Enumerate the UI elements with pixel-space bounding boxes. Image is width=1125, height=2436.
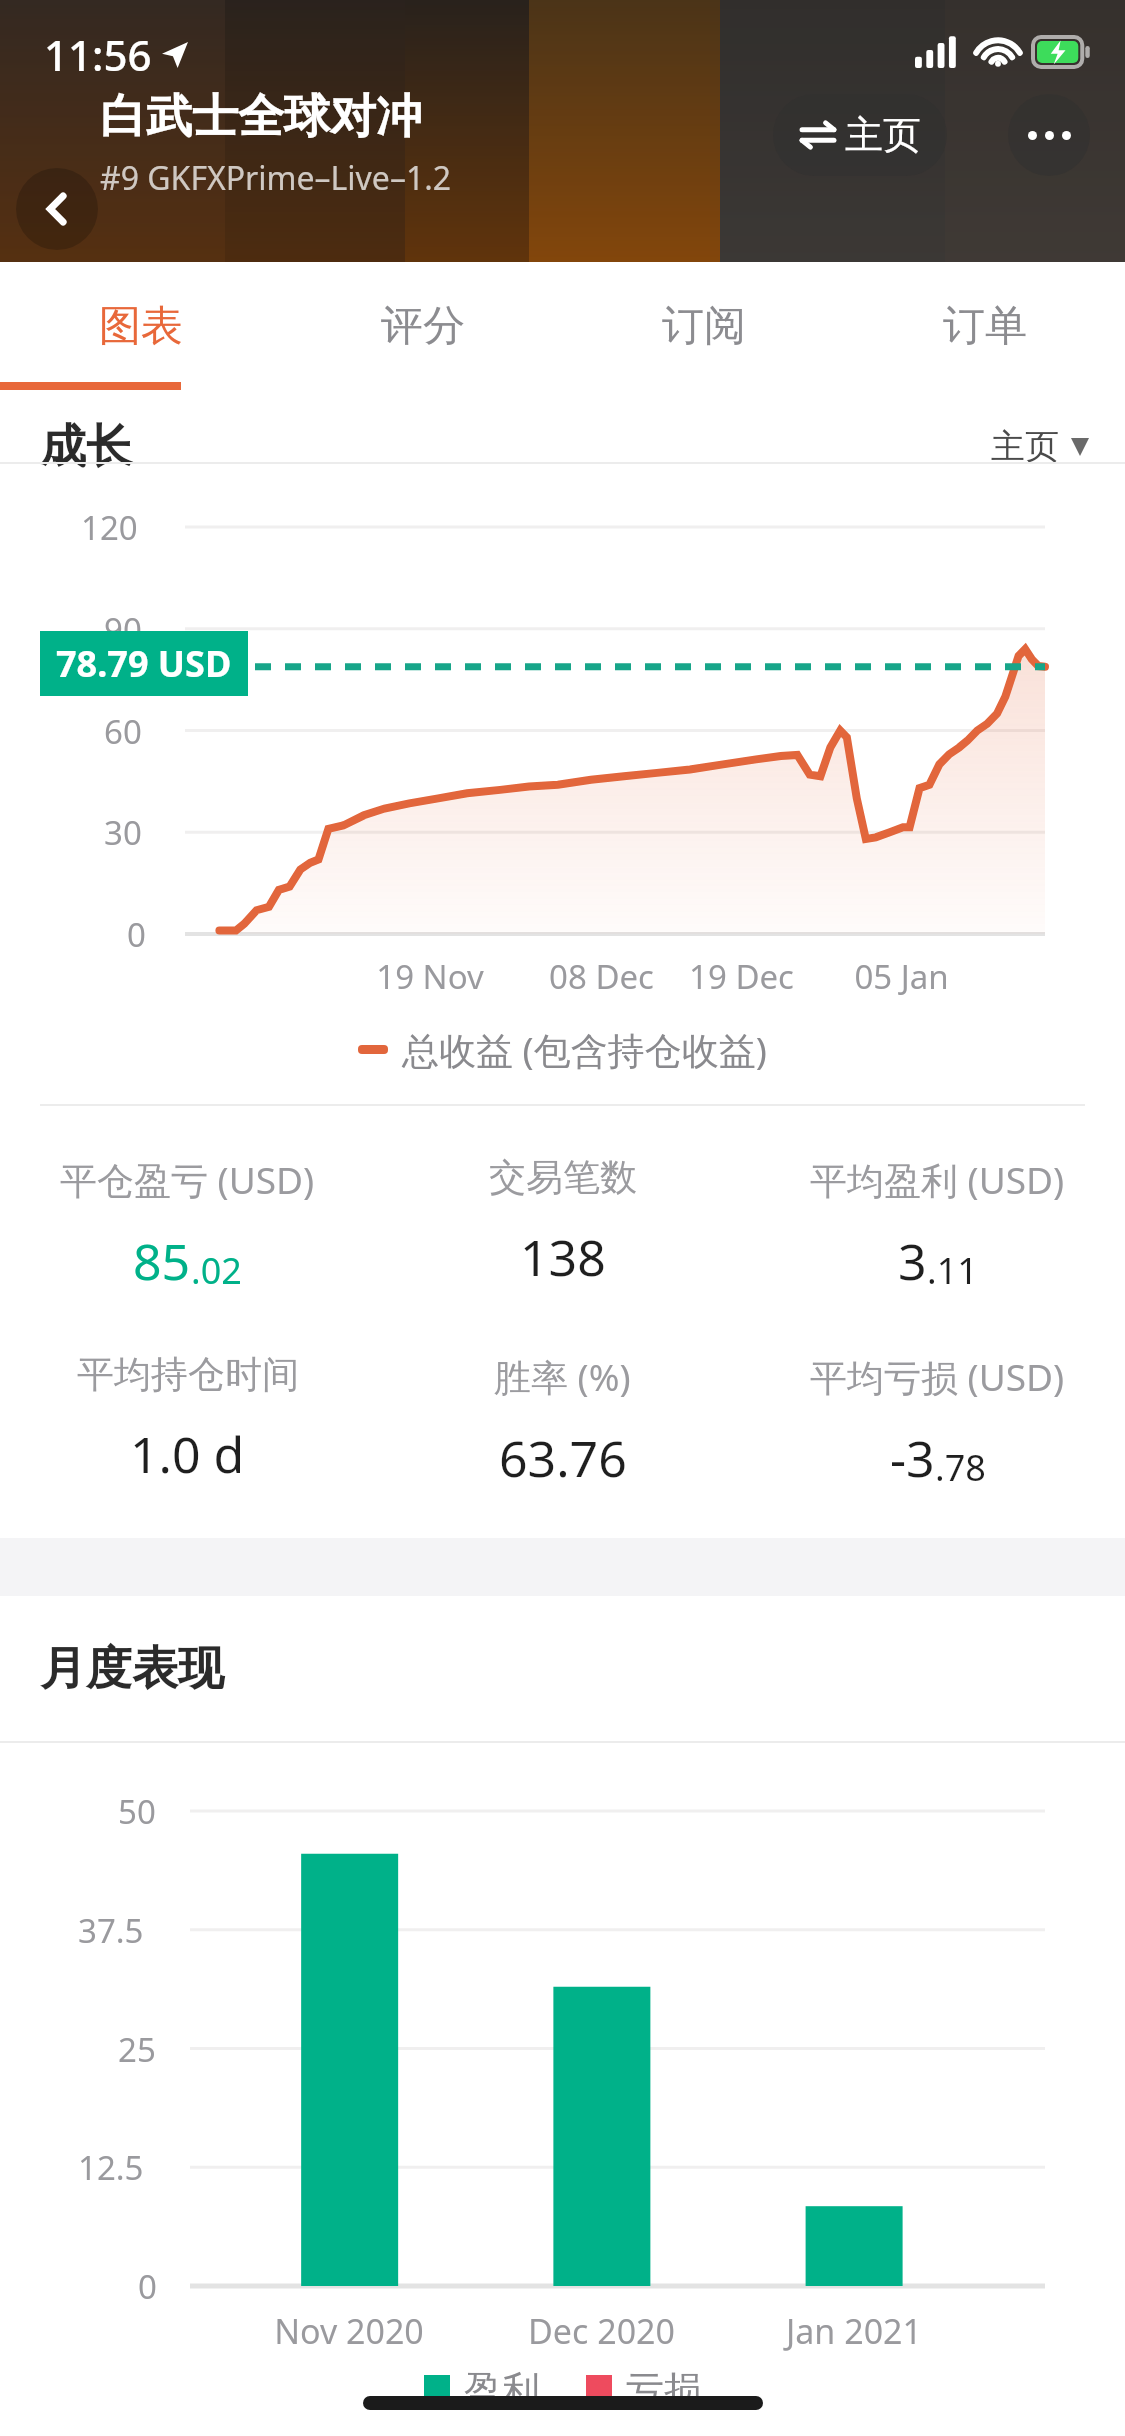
staticText: 订阅 [662, 300, 746, 353]
staticText: 19 Nov [376, 954, 484, 999]
staticText: 63.76 [499, 1424, 627, 1492]
button[interactable]: 平均持仓时间 [0, 1351, 375, 1488]
staticText: Jan 2021 [786, 2308, 922, 2354]
staticText: 85 [133, 1227, 191, 1295]
staticText: 19 Dec [689, 954, 794, 999]
staticText: 平均亏损 (USD) [810, 1351, 1065, 1402]
staticText: 平仓盈亏 (USD) [60, 1154, 315, 1205]
button[interactable]: 平均盈利 (USD) [750, 1154, 1125, 1295]
button[interactable]: 平仓盈亏 (USD) [0, 1154, 375, 1295]
button[interactable]: More options [1008, 94, 1090, 176]
button[interactable]: 订阅 [563, 262, 844, 390]
staticText: 90 [104, 607, 142, 652]
button[interactable]: 平均亏损 (USD) [750, 1351, 1125, 1492]
staticText: 主页 [845, 111, 921, 159]
button[interactable]: 评分 [282, 262, 563, 390]
staticText: 图表 [99, 300, 183, 353]
staticText: 3 [898, 1227, 927, 1295]
staticText: 月度表现 [40, 1640, 224, 1698]
button[interactable]: 图表 [0, 262, 282, 390]
staticText: 平均盈利 (USD) [810, 1154, 1065, 1205]
staticText: 05 Jan [854, 954, 949, 999]
staticText: 总收益 (包含持仓收益) [402, 1024, 767, 1075]
staticText: 成长 [40, 418, 132, 476]
staticText: 主页 [991, 425, 1059, 468]
staticText: 11:56 [44, 26, 152, 83]
staticText: #9 GKFXPrime–Live–1.2 [100, 156, 452, 200]
staticText: 78.79 USD [56, 639, 232, 688]
staticText: Nov 2020 [274, 2308, 424, 2354]
staticText: .02 [191, 1246, 242, 1295]
staticText: 37.5 [78, 1908, 144, 1953]
staticText: 平均持仓时间 [77, 1351, 299, 1398]
staticText: 亏损 [626, 2366, 702, 2414]
staticText: 胜率 (%) [494, 1351, 631, 1402]
staticText: 1.0 d [130, 1420, 245, 1488]
button[interactable]: 主页 [991, 425, 1089, 468]
staticText: 0 [127, 912, 146, 957]
staticText: 138 [520, 1223, 606, 1291]
staticText: 盈利 [464, 2366, 540, 2414]
button[interactable]: 主页 [773, 94, 947, 176]
staticText: 12.5 [78, 2145, 144, 2190]
button[interactable]: 胜率 (%) [375, 1351, 750, 1492]
button[interactable]: 交易笔数 [375, 1154, 750, 1291]
staticText: .78 [935, 1443, 986, 1492]
staticText: Dec 2020 [528, 2308, 675, 2354]
staticText: .11 [927, 1246, 978, 1295]
staticText: -3 [890, 1424, 935, 1492]
staticText: 交易笔数 [489, 1154, 637, 1201]
staticText: 30 [104, 810, 142, 855]
staticText: 0 [138, 2264, 157, 2309]
button[interactable]: Back [16, 168, 98, 250]
button[interactable]: 订单 [844, 262, 1125, 390]
staticText: 订单 [943, 300, 1027, 353]
staticText: 08 Dec [549, 954, 654, 999]
staticText: 60 [104, 709, 142, 754]
staticText: 评分 [381, 300, 465, 353]
staticText: 25 [118, 2027, 156, 2072]
staticText: 50 [118, 1789, 156, 1834]
staticText: 白武士全球对冲 [100, 88, 422, 146]
staticText: 120 [81, 505, 138, 550]
